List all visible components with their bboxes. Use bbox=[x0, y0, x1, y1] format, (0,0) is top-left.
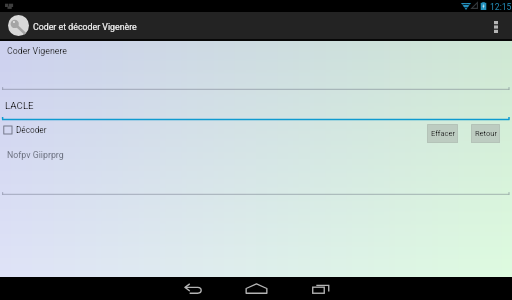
button[interactable]: Décoder bbox=[3, 125, 47, 135]
button[interactable]: Retour bbox=[471, 124, 500, 143]
staticText: Nofpv Giiprprg bbox=[7, 150, 64, 160]
button[interactable]: Effacer bbox=[427, 124, 458, 143]
button[interactable]: More options bbox=[486, 12, 508, 41]
staticText: 12:15 bbox=[490, 2, 512, 12]
staticText: LACLE bbox=[5, 100, 34, 111]
staticText: Coder et décoder Vigenère bbox=[33, 22, 137, 32]
button[interactable]: Back bbox=[181, 277, 205, 300]
button[interactable]: Recent apps bbox=[309, 277, 333, 300]
staticText: Retour bbox=[475, 129, 497, 138]
staticText: Coder Vigenere bbox=[7, 46, 67, 56]
button[interactable]: Home bbox=[244, 277, 268, 300]
staticText: Décoder bbox=[16, 125, 47, 135]
staticText: Effacer bbox=[431, 129, 455, 138]
